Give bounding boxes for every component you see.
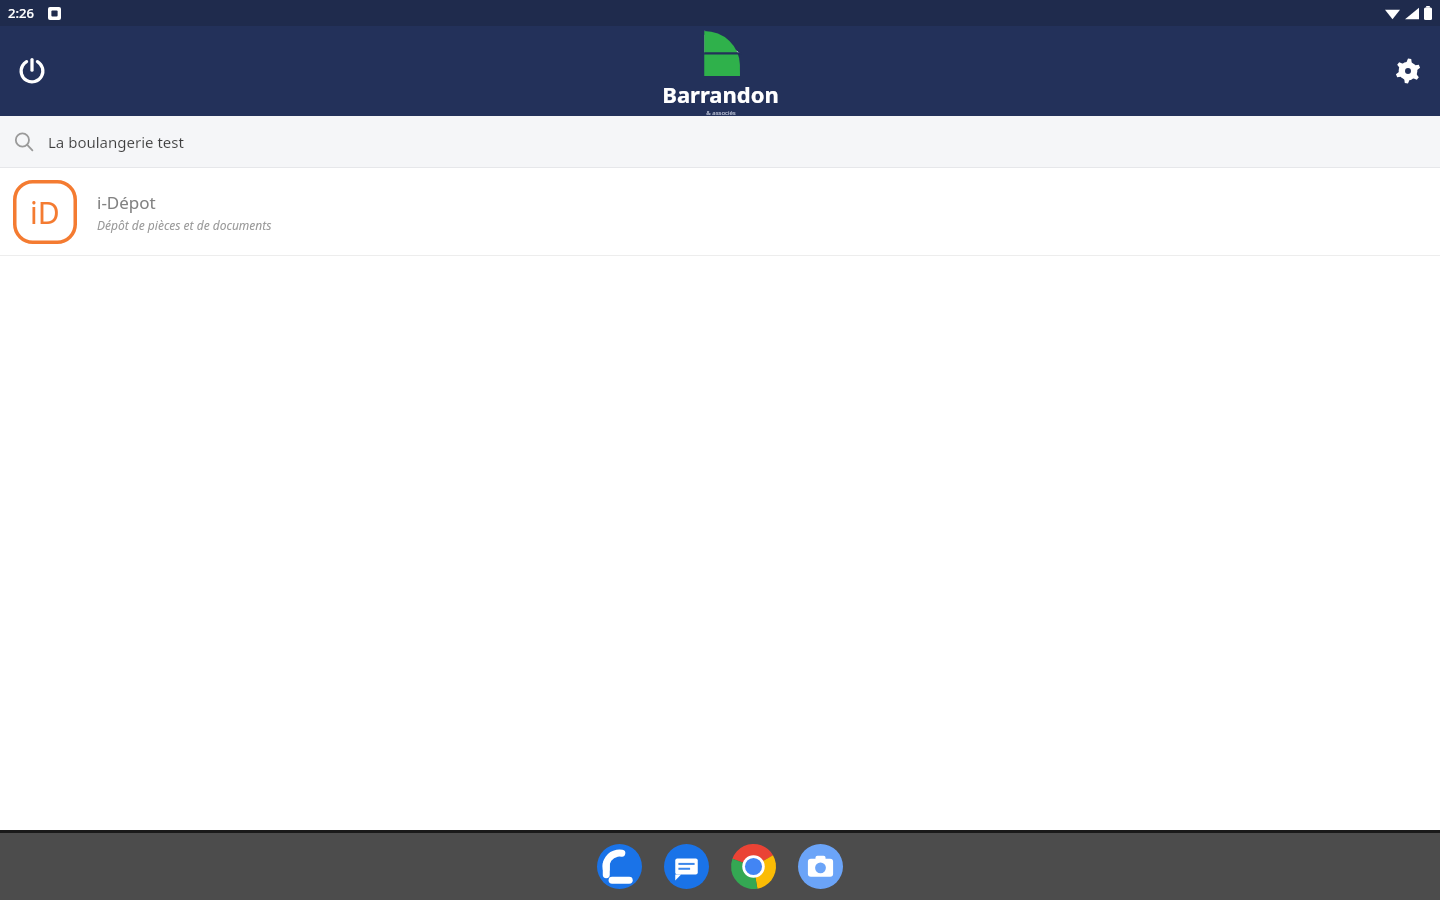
- button[interactable]: Chrome: [731, 844, 776, 889]
- button[interactable]: La boulangerie test: [0, 116, 1440, 168]
- staticText: 2:26: [8, 4, 34, 22]
- staticText: Barrandon: [662, 79, 779, 109]
- button[interactable]: Déconnexion: [8, 47, 56, 95]
- staticText: iD: [30, 192, 60, 233]
- staticText: La boulangerie test: [48, 132, 184, 152]
- button[interactable]: Appareil photo: [798, 844, 843, 889]
- button[interactable]: iD: [0, 168, 1440, 255]
- staticText: Dépôt de pièces et de documents: [97, 217, 272, 233]
- button[interactable]: Messages: [664, 844, 709, 889]
- staticText: i-Dépot: [97, 191, 156, 214]
- button[interactable]: Téléphone: [597, 844, 642, 889]
- staticText: & associés: [706, 109, 736, 116]
- button[interactable]: Paramètres: [1384, 47, 1432, 95]
